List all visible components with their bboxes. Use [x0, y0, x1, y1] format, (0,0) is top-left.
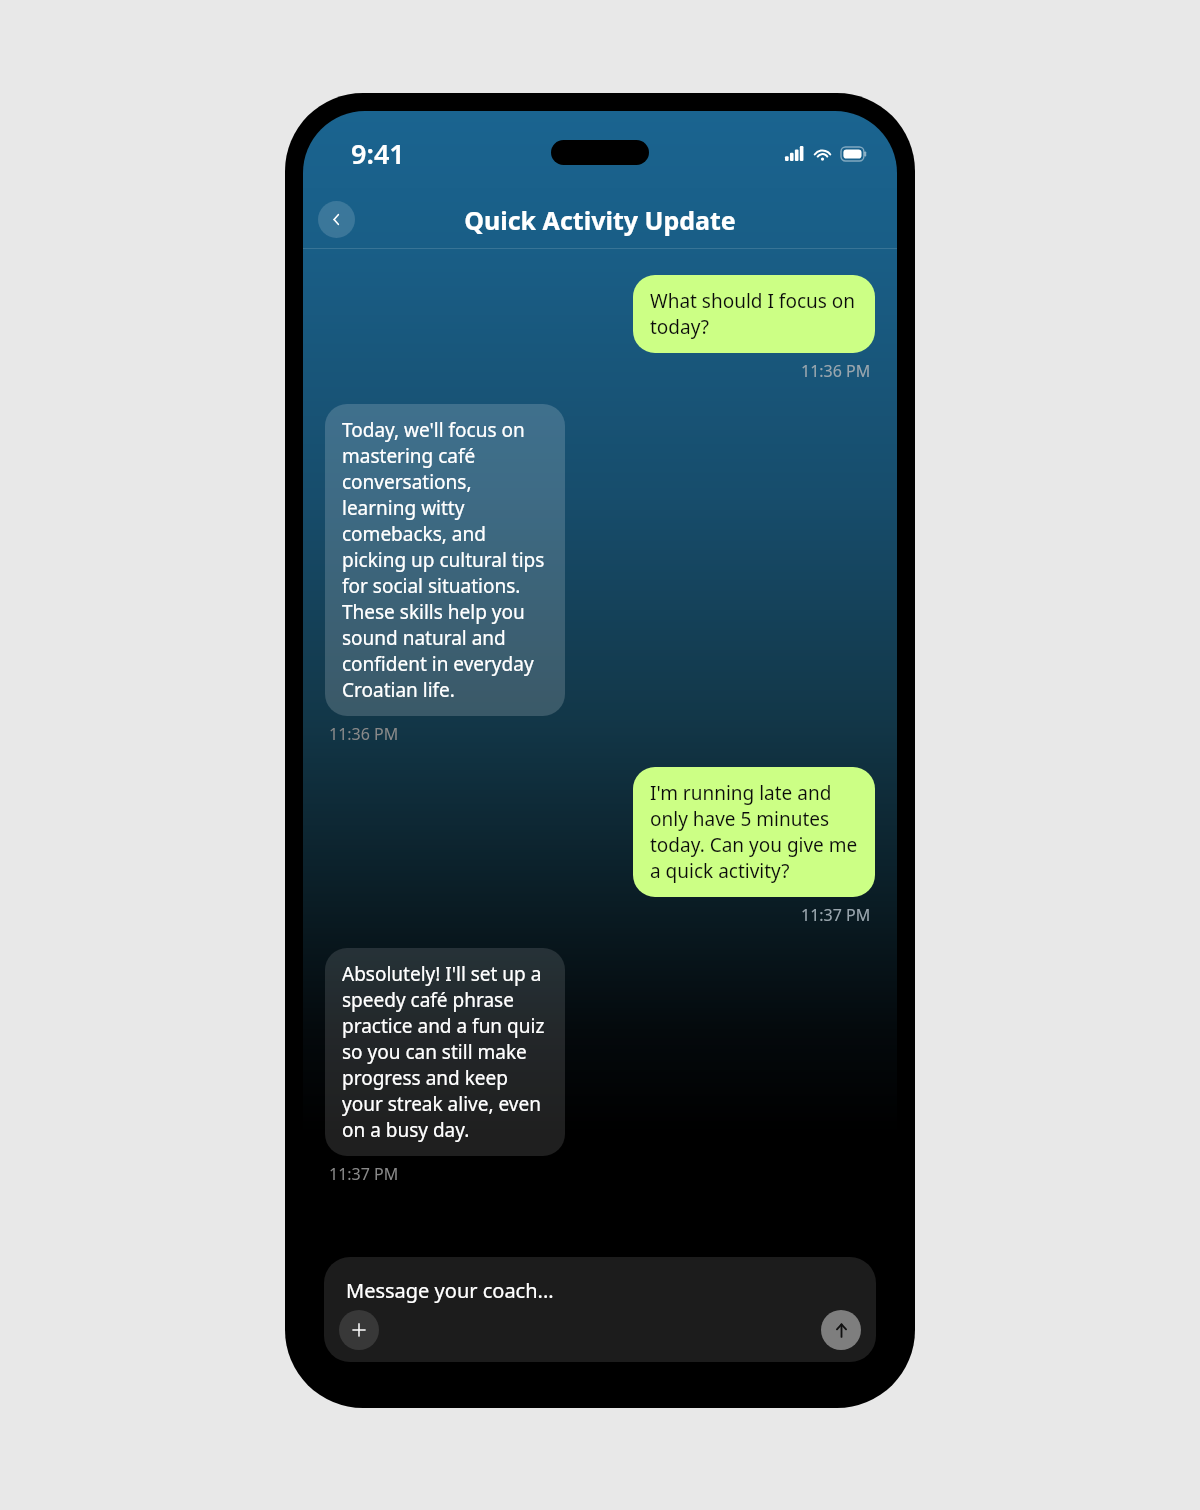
staticText: Absolutely! I'll set up a speedy café ph… — [342, 961, 548, 1143]
staticText: 11:37 PM — [329, 1163, 399, 1185]
staticText: What should I focus on today? — [650, 288, 858, 340]
button[interactable]: Today, we'll focus on mastering café con… — [325, 404, 565, 716]
staticText: Today, we'll focus on mastering café con… — [342, 417, 548, 703]
staticText: Quick Activity Update — [464, 203, 736, 237]
staticText: I'm running late and only have 5 minutes… — [650, 780, 858, 884]
staticText: 11:37 PM — [801, 904, 871, 926]
button[interactable]: Send — [821, 1310, 861, 1350]
button[interactable]: Add attachment — [339, 1310, 379, 1350]
button[interactable]: Message your coach... — [324, 1257, 876, 1362]
button[interactable]: What should I focus on today? — [633, 275, 875, 353]
button[interactable]: Back — [318, 201, 355, 238]
staticText: 9:41 — [351, 135, 405, 172]
staticText: 11:36 PM — [329, 723, 399, 745]
button[interactable]: I'm running late and only have 5 minutes… — [633, 767, 875, 897]
staticText: 11:36 PM — [801, 360, 871, 382]
staticText: Message your coach... — [346, 1277, 554, 1304]
button[interactable]: Absolutely! I'll set up a speedy café ph… — [325, 948, 565, 1156]
